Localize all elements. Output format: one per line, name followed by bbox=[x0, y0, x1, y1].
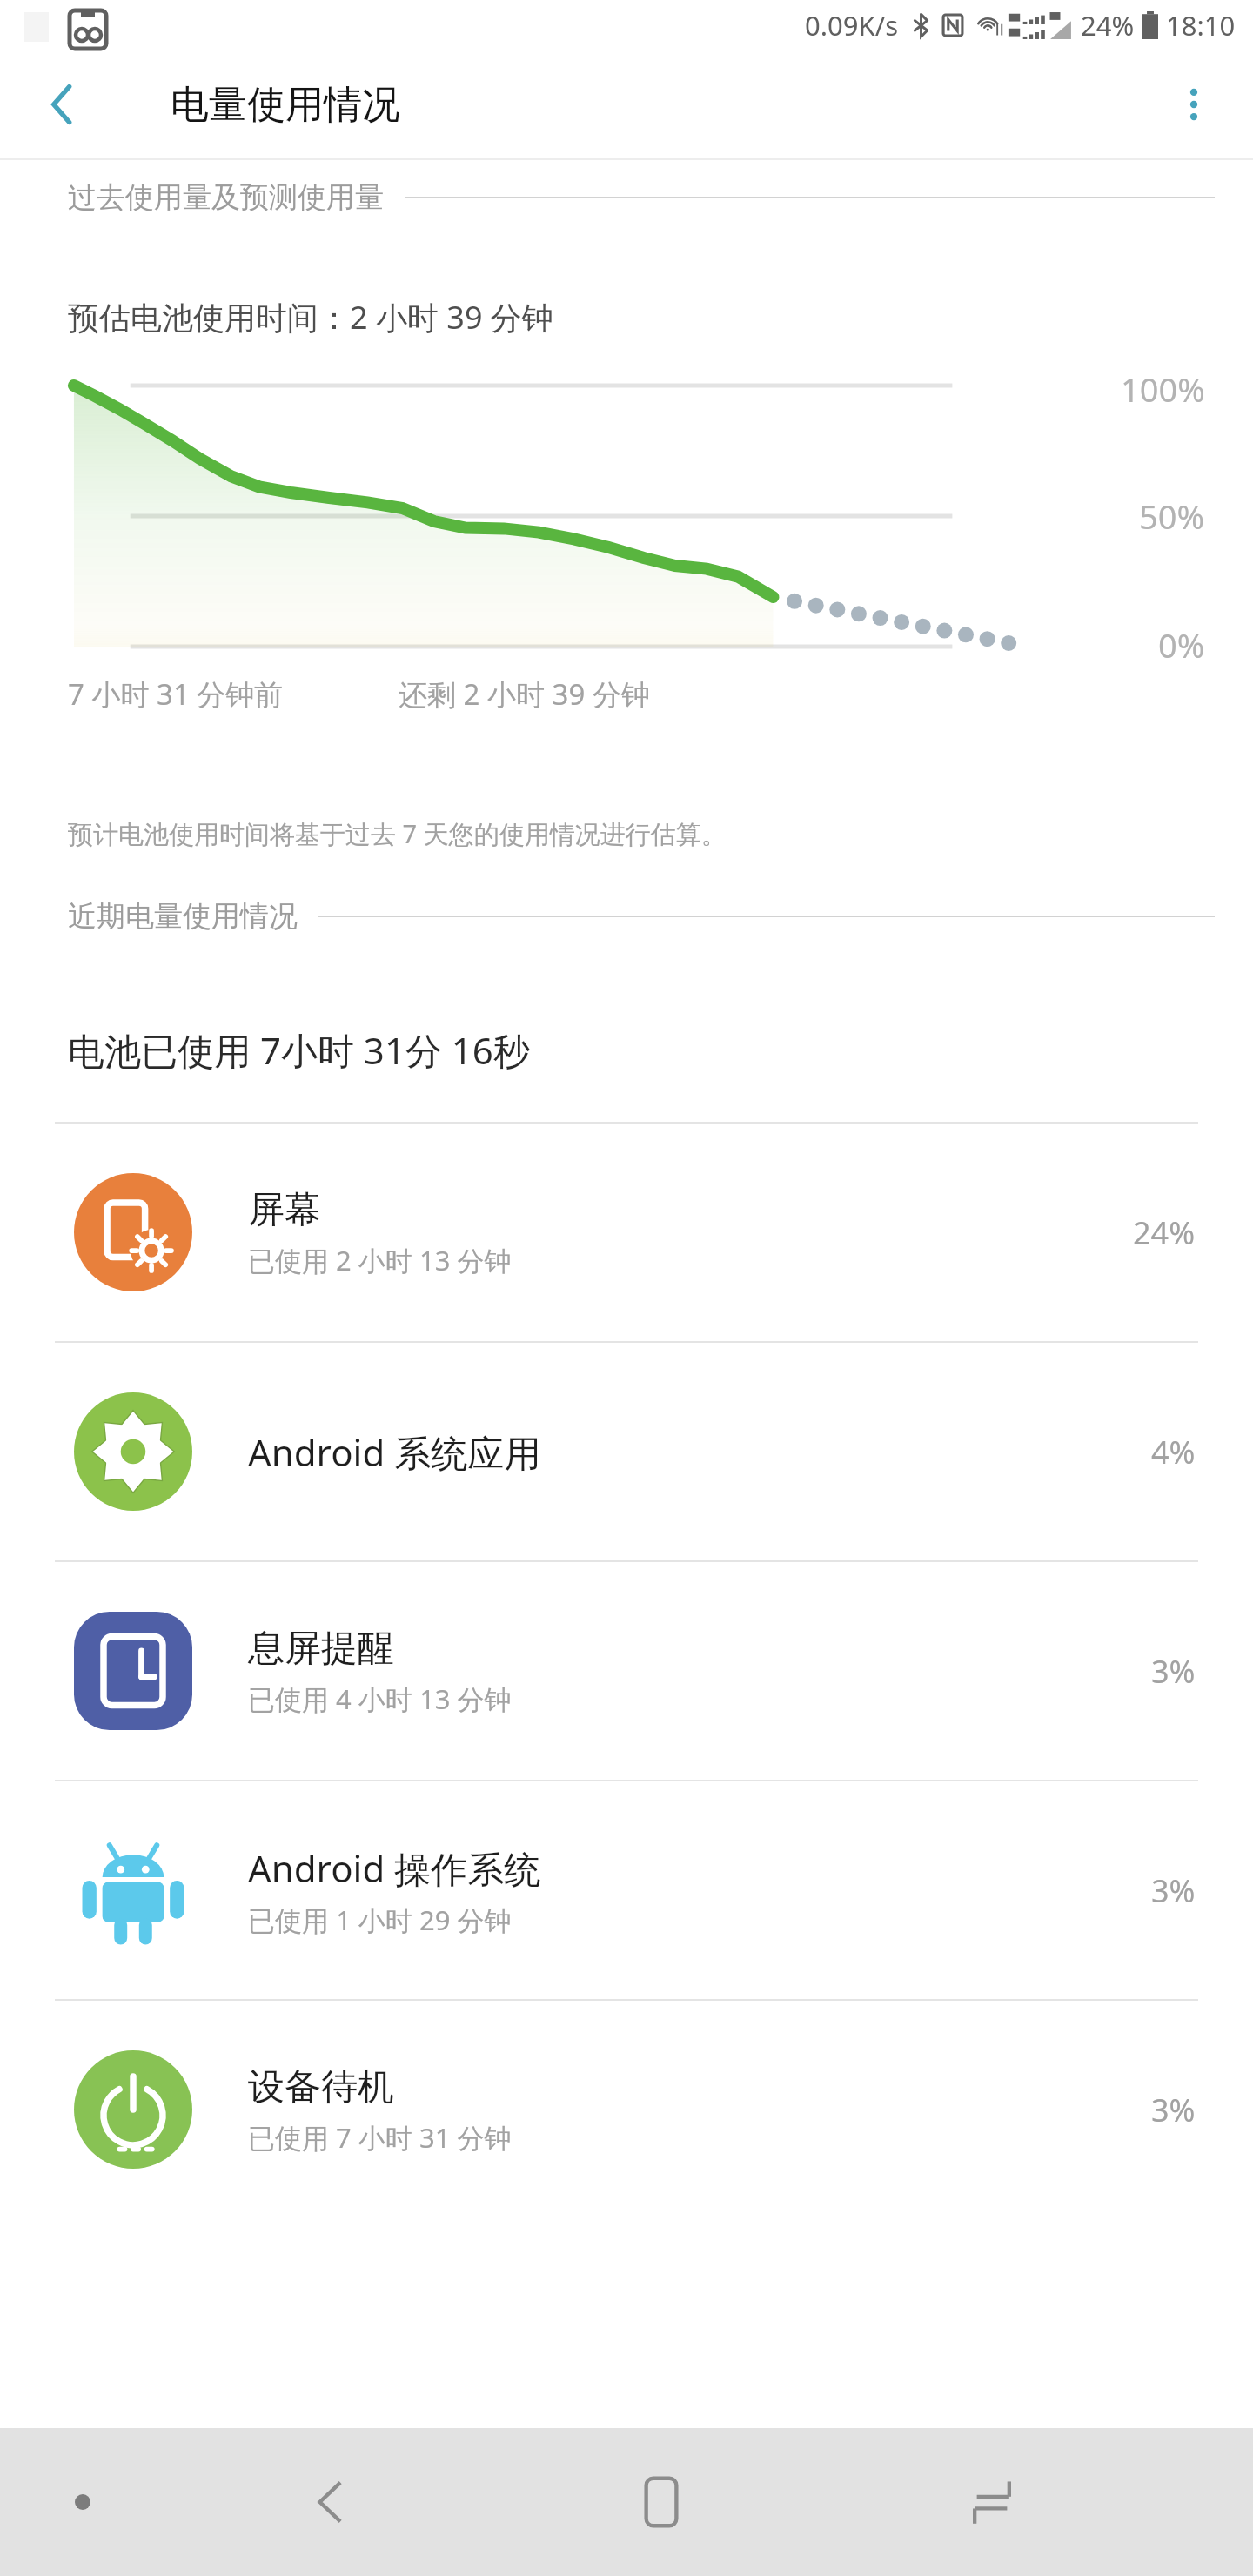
staticText: 近期电量使用情况 bbox=[68, 898, 298, 935]
button[interactable]: Back bbox=[165, 2428, 496, 2576]
staticText: 已使用 1 小时 29 分钟 bbox=[248, 1902, 512, 1938]
staticText: 过去使用量及预测使用量 bbox=[68, 179, 384, 216]
staticText: 0.09K/s bbox=[805, 7, 899, 44]
button[interactable]: Back bbox=[35, 77, 90, 132]
staticText: 0% bbox=[1158, 622, 1205, 667]
staticText: 预估电池使用时间：2 小时 39 分钟 bbox=[68, 296, 553, 339]
staticText: 100% bbox=[1121, 366, 1205, 412]
staticText: 息屏提醒 bbox=[248, 1626, 394, 1672]
staticText: 50% bbox=[1139, 493, 1205, 539]
staticText: 屏幕 bbox=[248, 1187, 321, 1233]
staticText: 已使用 4 小时 13 分钟 bbox=[248, 1680, 512, 1717]
staticText: 还剩 2 小时 39 分钟 bbox=[399, 674, 650, 714]
staticText: Android 操作系统 bbox=[248, 1843, 541, 1893]
staticText: 设备待机 bbox=[248, 2064, 394, 2110]
staticText: 3% bbox=[1151, 1869, 1196, 1912]
button[interactable]: More options bbox=[1166, 77, 1222, 132]
staticText: 18:10 bbox=[1166, 7, 1236, 44]
staticText: 7 小时 31 分钟前 bbox=[68, 674, 284, 714]
button[interactable]: 息屏提醒 bbox=[0, 1562, 1253, 1780]
button[interactable]: 设备待机 bbox=[0, 2001, 1253, 2218]
staticText: 预计电池使用时间将基于过去 7 天您的使用情况进行估算。 bbox=[68, 816, 727, 851]
staticText: 已使用 2 小时 13 分钟 bbox=[248, 1242, 512, 1278]
staticText: 已使用 7 小时 31 分钟 bbox=[248, 2119, 512, 2156]
button[interactable]: Home bbox=[496, 2428, 827, 2576]
staticText: 3% bbox=[1151, 2089, 1196, 2131]
button[interactable]: 屏幕 bbox=[0, 1124, 1253, 1341]
staticText: 4% bbox=[1151, 1431, 1196, 1473]
staticText: 24% bbox=[1081, 7, 1135, 44]
staticText: 电量使用情况 bbox=[171, 81, 400, 129]
button[interactable]: Indicator bbox=[61, 2480, 104, 2524]
staticText: 电池已使用 7小时 31分 16秒 bbox=[68, 1025, 530, 1075]
staticText: 3% bbox=[1151, 1650, 1196, 1693]
staticText: 24% bbox=[1133, 1211, 1196, 1254]
button[interactable]: Android 操作系统 bbox=[0, 1781, 1253, 1999]
button[interactable]: Android 系统应用 bbox=[0, 1343, 1253, 1560]
button[interactable]: Recents bbox=[827, 2428, 1157, 2576]
staticText: Android 系统应用 bbox=[248, 1427, 541, 1477]
